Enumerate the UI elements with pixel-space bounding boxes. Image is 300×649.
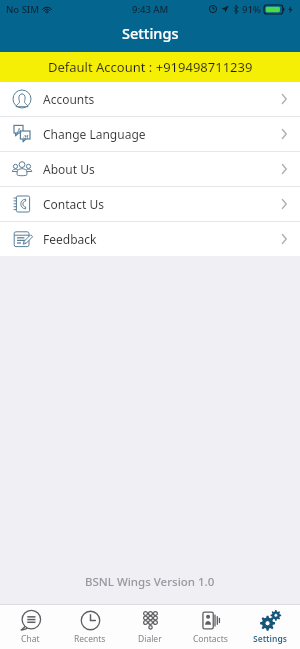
button[interactable]: Contact Us xyxy=(0,187,300,221)
staticText: Settings xyxy=(253,633,287,645)
staticText: Contacts xyxy=(193,633,228,645)
button[interactable]: About Us xyxy=(0,152,300,186)
staticText: 91% xyxy=(242,3,261,16)
staticText: Accounts xyxy=(43,91,95,107)
button[interactable]: Accounts xyxy=(0,82,300,116)
staticText: Contact Us xyxy=(43,196,105,212)
button[interactable]: Recents xyxy=(60,605,120,649)
staticText: A xyxy=(17,126,22,136)
staticText: Dialer xyxy=(138,633,162,645)
staticText: Default Account : +919498711239 xyxy=(48,58,253,76)
staticText: अ xyxy=(23,132,29,142)
staticText: Change Language xyxy=(43,126,146,142)
button[interactable]: Feedback xyxy=(0,222,300,256)
staticText: Feedback xyxy=(43,231,97,247)
staticText: About Us xyxy=(43,161,95,177)
staticText: 9:43 AM xyxy=(132,3,169,16)
button[interactable]: Dialer xyxy=(120,605,180,649)
button[interactable]: Chat xyxy=(0,605,60,649)
staticText: Settings xyxy=(122,23,179,43)
button[interactable]: Settings xyxy=(240,605,300,649)
staticText: Chat xyxy=(21,633,40,645)
button[interactable]: Contacts xyxy=(180,605,240,649)
button[interactable]: A xyxy=(0,117,300,151)
staticText: BSNL Wings Version 1.0 xyxy=(85,574,215,590)
staticText: No SIM xyxy=(6,3,39,16)
staticText: Recents xyxy=(74,633,106,645)
